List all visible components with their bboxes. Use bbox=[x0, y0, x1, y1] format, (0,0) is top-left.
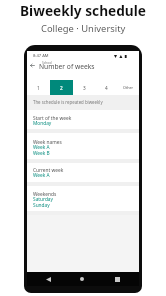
button[interactable]: Weekends bbox=[27, 186, 139, 211]
button[interactable]: 3 bbox=[73, 80, 95, 95]
staticText: Biweekly schedule bbox=[20, 1, 146, 20]
button[interactable]: Home bbox=[75, 272, 89, 286]
staticText: Week names bbox=[33, 139, 62, 146]
button[interactable]: 1 bbox=[27, 80, 50, 95]
staticText: 3 bbox=[83, 85, 86, 91]
button[interactable]: Start of the week bbox=[27, 110, 139, 129]
staticText: Monday bbox=[33, 120, 52, 127]
staticText: Number of weeks bbox=[39, 62, 95, 71]
button[interactable]: Other bbox=[117, 80, 139, 95]
staticText: The schedule is repeated biweekly bbox=[33, 99, 103, 105]
staticText: Weekends bbox=[33, 191, 57, 198]
button[interactable]: Current week bbox=[27, 162, 139, 181]
staticText: Current week bbox=[33, 167, 64, 174]
staticText: Week B bbox=[33, 150, 50, 157]
staticText: 2 bbox=[60, 85, 63, 91]
button[interactable]: Recent apps bbox=[110, 272, 124, 286]
button[interactable]: Week names bbox=[27, 134, 139, 159]
staticText: Week A bbox=[33, 144, 50, 151]
staticText: 4 bbox=[105, 85, 108, 91]
staticText: 1 bbox=[37, 85, 40, 91]
button[interactable]: 4 bbox=[95, 80, 117, 95]
staticText: 8:47 AM bbox=[33, 53, 49, 59]
button[interactable]: Navigate up bbox=[27, 60, 38, 71]
staticText: Saturday bbox=[33, 196, 53, 203]
staticText: Start of the week bbox=[33, 115, 72, 122]
staticText: College · University bbox=[41, 22, 126, 35]
button[interactable]: 2 bbox=[50, 80, 73, 95]
staticText: Sunday bbox=[33, 202, 50, 209]
staticText: School bbox=[42, 61, 52, 65]
staticText: Week A bbox=[33, 172, 50, 179]
staticText: Other bbox=[123, 85, 134, 90]
button[interactable]: Back bbox=[41, 272, 55, 286]
